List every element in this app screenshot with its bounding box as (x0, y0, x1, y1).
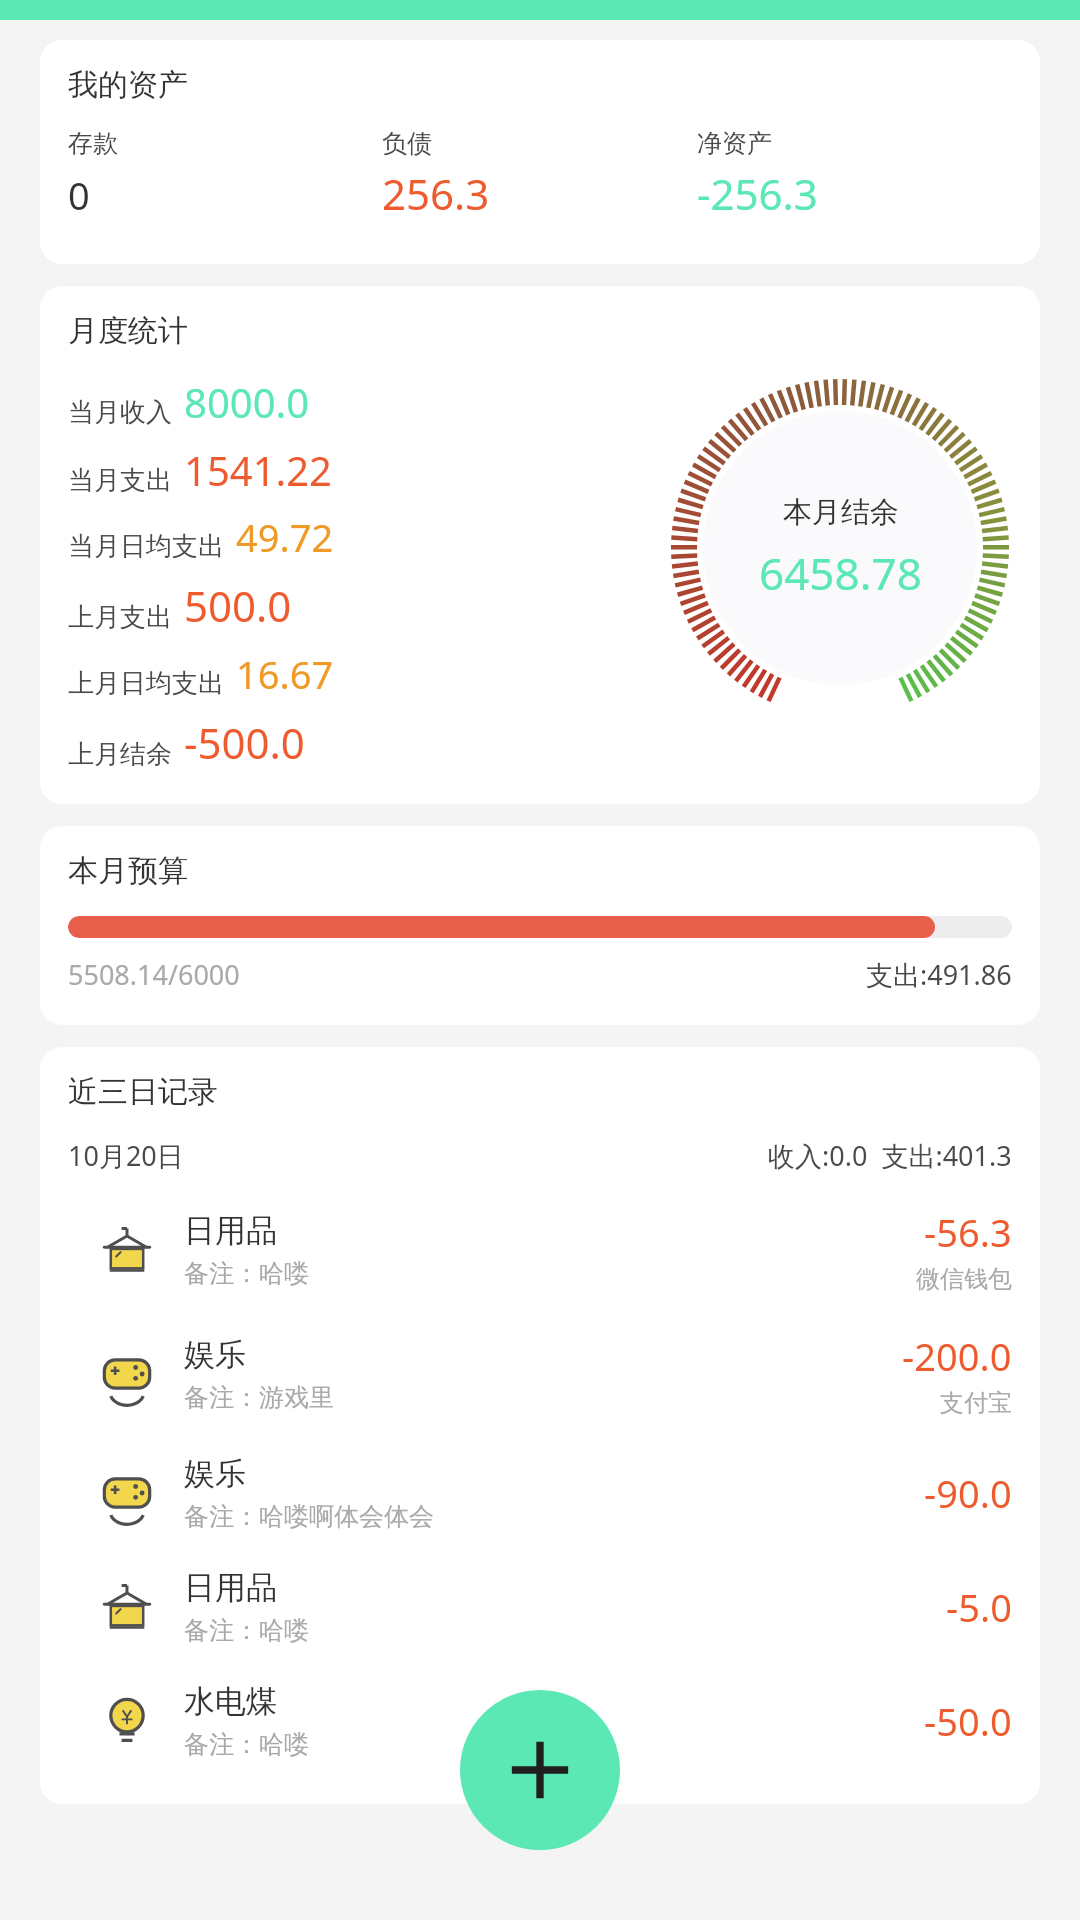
staticText: 10月20日 (68, 1137, 184, 1174)
staticText: -50.0 (924, 1695, 1012, 1747)
staticText: -500.0 (184, 714, 305, 771)
staticText: 上月日均支出 (68, 667, 224, 700)
staticText: 支付宝 (940, 1388, 1012, 1418)
staticText: 支出:491.86 (866, 956, 1012, 993)
staticText: 当月日均支出 (68, 530, 224, 563)
button[interactable]: 我的资产 (40, 40, 1040, 264)
staticText: 当月支出 (68, 464, 172, 497)
button[interactable]: Add record (460, 1690, 620, 1850)
staticText: 收入:0.0 支出:401.3 (768, 1137, 1012, 1174)
button[interactable]: 水电煤 (68, 1664, 1012, 1778)
staticText: -56.3 (924, 1206, 1012, 1258)
staticText: 备注：哈喽 (184, 1258, 309, 1289)
button[interactable]: 娱乐 (68, 1436, 1012, 1550)
staticText: 备注：哈喽 (184, 1729, 309, 1760)
staticText: 上月结余 (68, 738, 172, 771)
staticText: 日用品 (184, 1211, 277, 1250)
staticText: 水电煤 (184, 1682, 277, 1721)
staticText: 存款 (68, 128, 118, 159)
staticText: 本月预算 (68, 852, 188, 890)
staticText: 16.67 (236, 648, 334, 700)
staticText: 500.0 (184, 577, 292, 634)
staticText: 当月收入 (68, 396, 172, 429)
staticText: 微信钱包 (916, 1264, 1012, 1294)
button[interactable]: 本月预算 (40, 826, 1040, 1025)
button[interactable]: 日用品 (68, 1188, 1012, 1312)
staticText: 8000.0 (184, 375, 310, 429)
staticText: -256.3 (697, 165, 818, 222)
staticText: 备注：哈喽啊体会体会 (184, 1501, 434, 1532)
staticText: -90.0 (924, 1467, 1012, 1519)
staticText: 近三日记录 (68, 1073, 218, 1111)
button[interactable]: 日用品 (68, 1550, 1012, 1664)
staticText: 本月结余 (783, 494, 899, 531)
staticText: -200.0 (902, 1330, 1012, 1382)
staticText: 上月支出 (68, 601, 172, 634)
staticText: 5508.14/6000 (68, 956, 240, 993)
staticText: 备注：游戏里 (184, 1382, 334, 1413)
staticText: 256.3 (382, 165, 490, 222)
button[interactable]: 月度统计 (40, 286, 1040, 804)
staticText: 49.72 (236, 511, 334, 563)
staticText: 负债 (382, 128, 432, 159)
staticText: 月度统计 (68, 312, 188, 350)
staticText: 6458.78 (759, 543, 922, 603)
staticText: 0 (68, 169, 90, 221)
staticText: 1541.22 (184, 443, 332, 497)
staticText: -5.0 (946, 1581, 1012, 1633)
staticText: 娱乐 (184, 1335, 246, 1374)
staticText: 日用品 (184, 1568, 277, 1607)
button[interactable]: 娱乐 (68, 1312, 1012, 1436)
staticText: 娱乐 (184, 1454, 246, 1493)
staticText: 净资产 (697, 128, 772, 159)
staticText: 我的资产 (68, 66, 188, 104)
staticText: 备注：哈喽 (184, 1615, 309, 1646)
